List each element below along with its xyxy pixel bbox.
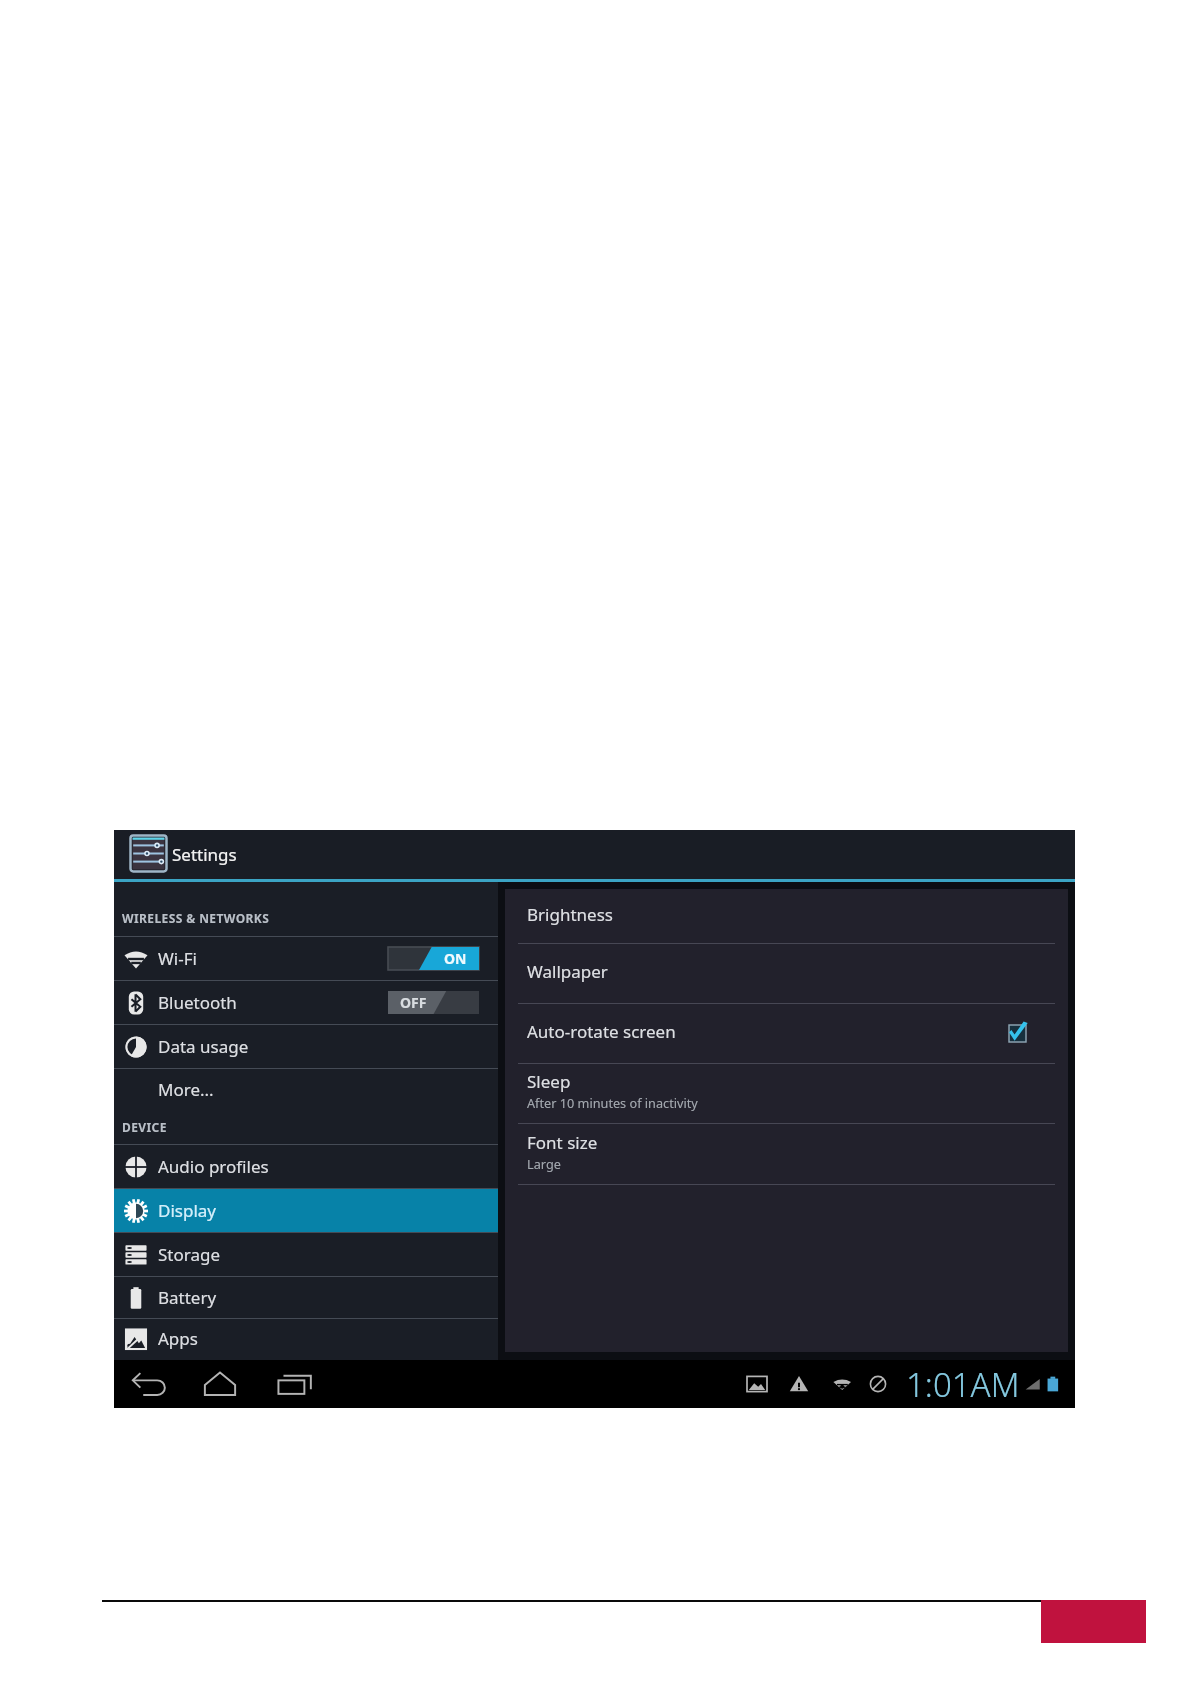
staticText: Battery [158, 1286, 217, 1309]
button[interactable]: ON [388, 947, 479, 970]
staticText: Large [527, 1155, 561, 1172]
staticText: Data usage [158, 1035, 249, 1058]
button[interactable]: Brightness [518, 889, 1055, 943]
button[interactable]: Font size [518, 1124, 1055, 1184]
button[interactable]: Bluetooth [114, 981, 498, 1024]
button[interactable]: Wi-Fi [114, 937, 498, 980]
button[interactable]: Auto-rotate screen [518, 1004, 1055, 1063]
staticText: After 10 minutes of inactivity [527, 1094, 698, 1111]
button[interactable]: Display [114, 1189, 498, 1232]
staticText: DEVICE [122, 1119, 167, 1135]
staticText: Display [158, 1199, 216, 1222]
staticText: WIRELESS & NETWORKS [122, 910, 270, 926]
staticText: Storage [158, 1243, 221, 1266]
staticText: Sleep [527, 1070, 571, 1093]
button[interactable]: Sleep [518, 1064, 1055, 1123]
button[interactable]: Data usage [114, 1025, 498, 1068]
button[interactable]: Wallpaper [518, 944, 1055, 1003]
staticText: OFF [400, 993, 427, 1012]
staticText: Audio profiles [158, 1155, 269, 1178]
button[interactable]: Auto-rotate screen checkbox [1009, 1025, 1026, 1042]
button[interactable]: Settings [114, 830, 294, 879]
button[interactable]: Back [131, 1371, 167, 1397]
button[interactable]: Recent apps [277, 1371, 313, 1397]
button[interactable]: More... [114, 1069, 498, 1110]
staticText: Wi-Fi [158, 947, 197, 970]
staticText: ON [444, 949, 467, 968]
staticText: Brightness [527, 903, 613, 926]
button[interactable]: OFF [388, 991, 479, 1014]
staticText: Apps [158, 1327, 198, 1350]
staticText: Auto-rotate screen [527, 1020, 676, 1043]
button[interactable]: Apps [114, 1319, 498, 1358]
staticText: Font size [527, 1131, 598, 1154]
staticText: 1:01AM [906, 1362, 1020, 1407]
staticText: Bluetooth [158, 991, 237, 1014]
staticText: Wallpaper [527, 960, 608, 983]
button[interactable]: Audio profiles [114, 1145, 498, 1188]
button[interactable]: Home [202, 1371, 238, 1397]
button[interactable]: Storage [114, 1233, 498, 1276]
staticText: More... [158, 1078, 214, 1101]
button[interactable]: Battery [114, 1277, 498, 1318]
staticText: Settings [172, 843, 237, 866]
